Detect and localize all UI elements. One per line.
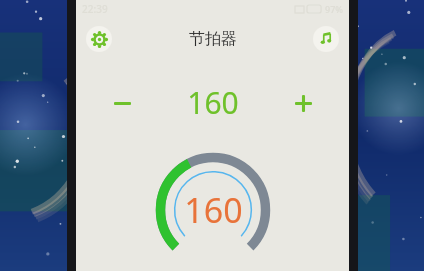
button[interactable]: Decrease tempo <box>102 86 142 120</box>
button[interactable]: Sound <box>313 26 339 52</box>
staticText: 节拍器 <box>189 29 237 49</box>
button[interactable]: Increase tempo <box>283 86 323 120</box>
staticText: 160 <box>187 82 239 123</box>
button[interactable]: Settings <box>86 26 112 52</box>
staticText: 97% <box>325 3 343 15</box>
button[interactable]: 160 <box>154 151 272 269</box>
staticText: 22:39 <box>82 2 108 16</box>
staticText: 160 <box>184 187 243 233</box>
